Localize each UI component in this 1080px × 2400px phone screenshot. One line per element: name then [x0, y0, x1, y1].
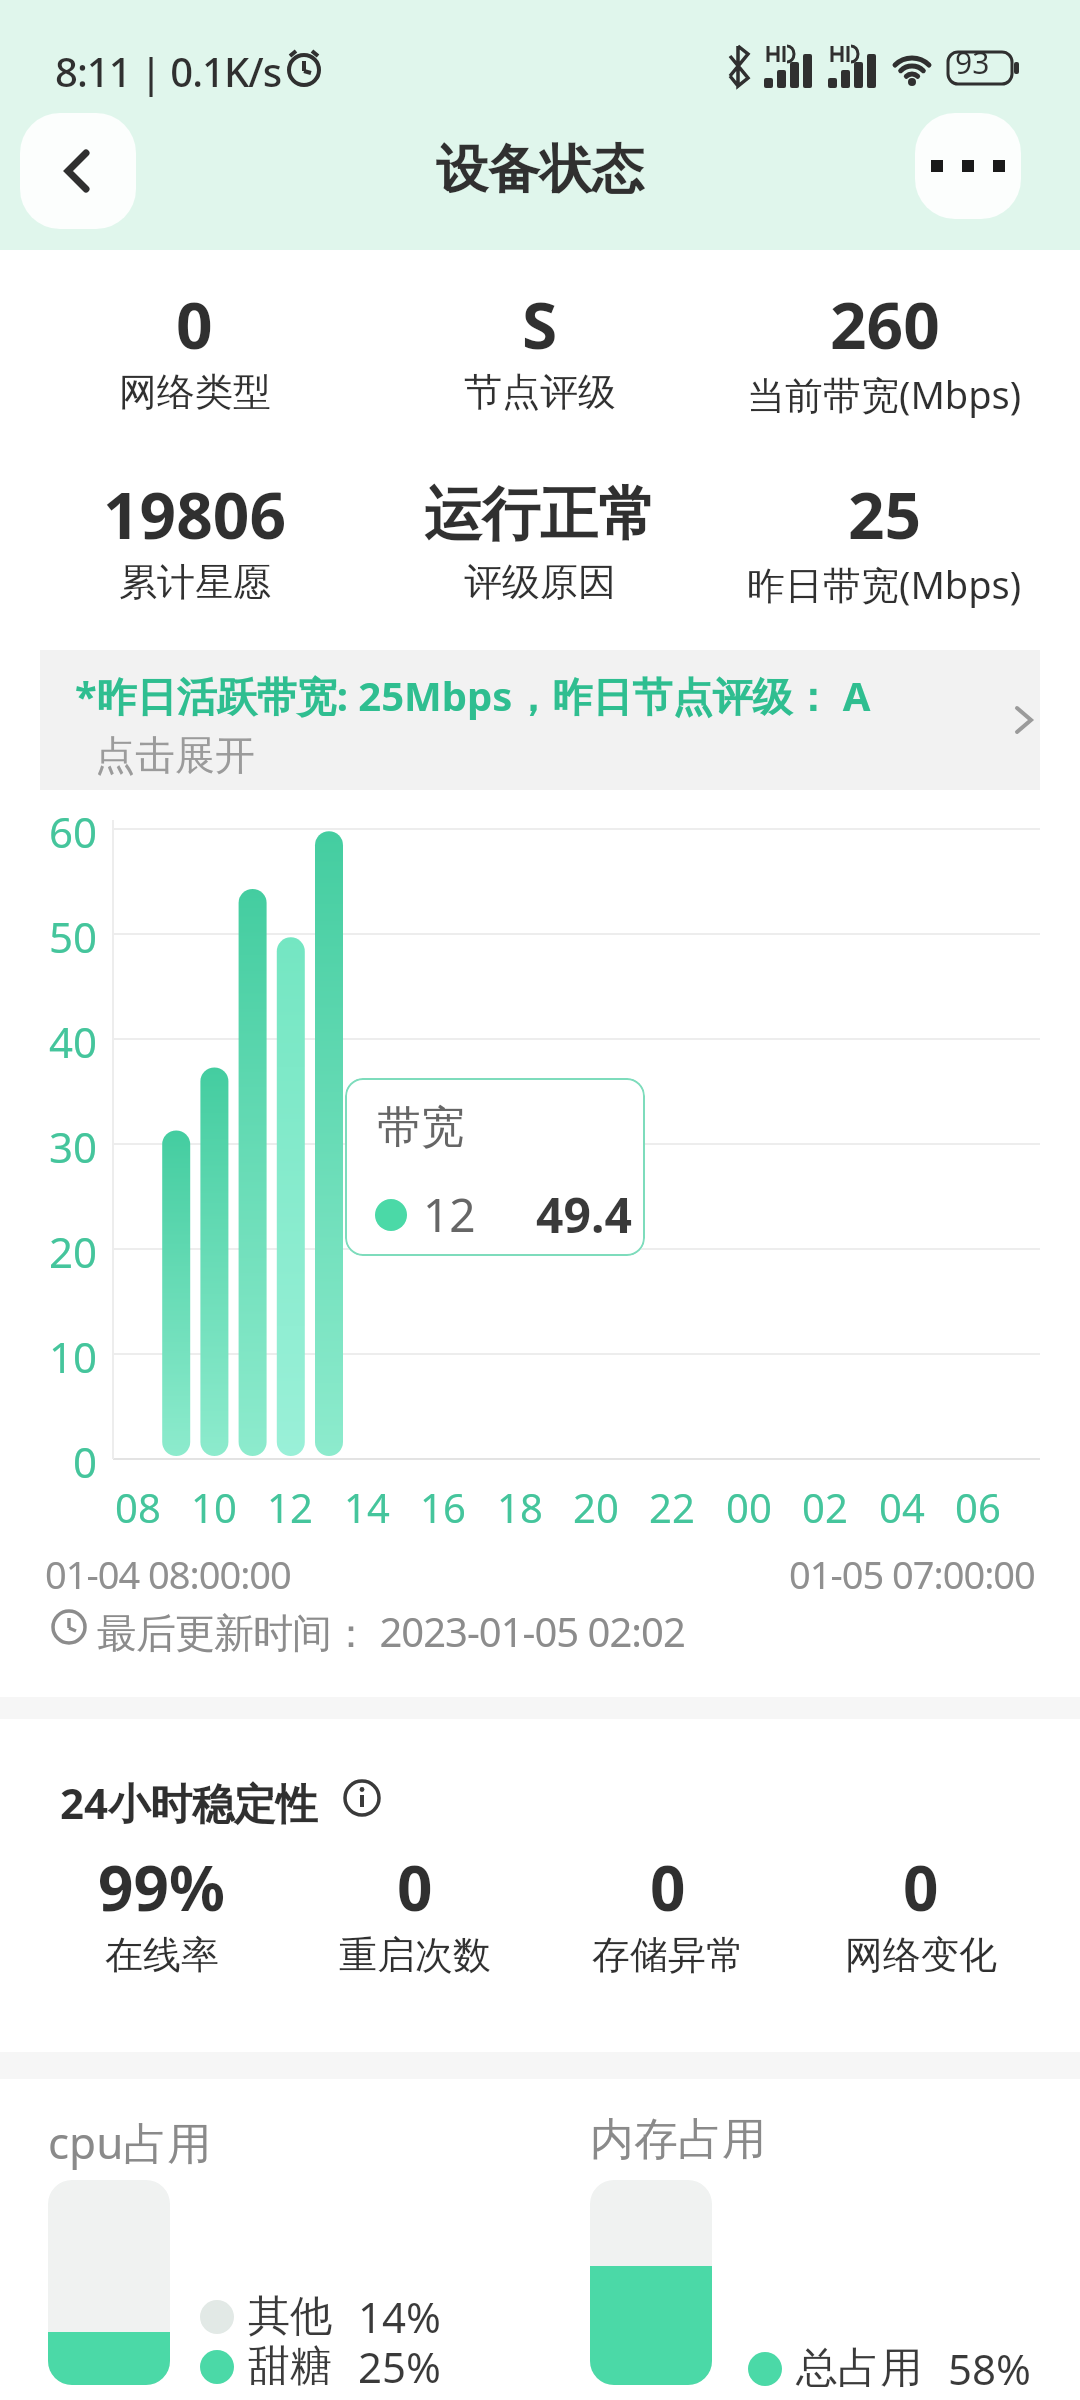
- staticText: 带宽: [377, 1100, 465, 1155]
- staticText: 30: [49, 1118, 98, 1175]
- staticText: *昨日活跃带宽: 25Mbps，昨日节点评级： A: [75, 668, 871, 723]
- staticText: 0: [397, 1845, 433, 1929]
- staticText: 25: [848, 471, 922, 558]
- staticText: 260: [830, 281, 940, 368]
- staticText: 16: [420, 1480, 466, 1534]
- staticText: 04: [879, 1480, 925, 1534]
- staticText: 50: [49, 908, 98, 965]
- staticText: 49.4: [536, 1182, 632, 1247]
- button[interactable]: *昨日活跃带宽: 25Mbps，昨日节点评级： A: [40, 650, 1040, 790]
- staticText: 网络类型: [119, 368, 271, 416]
- staticText: 06: [955, 1480, 1001, 1534]
- staticText: 93: [955, 42, 990, 83]
- staticText: 点击展开: [95, 730, 255, 780]
- staticText: 08: [115, 1480, 161, 1534]
- staticText: 总占用: [796, 2342, 922, 2395]
- staticText: 20: [49, 1223, 98, 1280]
- staticText: 运行正常: [424, 478, 656, 551]
- staticText: 存储异常: [592, 1931, 744, 1979]
- staticText: 0: [73, 1433, 98, 1490]
- staticText: 60: [49, 803, 98, 860]
- staticText: cpu占用: [48, 2112, 212, 2172]
- staticText: 00: [726, 1480, 772, 1534]
- staticText: 0: [650, 1845, 686, 1929]
- button[interactable]: [20, 113, 136, 229]
- staticText: 19806: [103, 471, 287, 558]
- staticText: 12: [267, 1480, 313, 1534]
- staticText: 18: [497, 1480, 543, 1534]
- staticText: 0: [176, 281, 213, 368]
- staticText: 58%: [948, 2340, 1031, 2397]
- staticText: 10: [191, 1480, 237, 1534]
- staticText: 99%: [98, 1845, 225, 1929]
- staticText: 设备状态: [436, 137, 644, 203]
- staticText: 01-05 07:00:00: [789, 1548, 1035, 1600]
- staticText: 节点评级: [464, 368, 616, 416]
- staticText: 评级原因: [464, 558, 616, 606]
- staticText: 8:11 | 0.1K/s: [55, 44, 282, 98]
- staticText: 当前带宽(Mbps): [747, 368, 1022, 420]
- staticText: 14: [344, 1480, 390, 1534]
- staticText: 甜糖: [248, 2340, 332, 2393]
- staticText: S: [522, 281, 558, 368]
- staticText: 10: [49, 1328, 98, 1385]
- staticText: 22: [649, 1480, 695, 1534]
- staticText: 14%: [358, 2288, 441, 2345]
- staticText: 40: [49, 1013, 98, 1070]
- staticText: 网络变化: [845, 1931, 997, 1979]
- staticText: 01-04 08:00:00: [45, 1548, 291, 1600]
- staticText: 02: [802, 1480, 848, 1534]
- staticText: 其他: [248, 2290, 332, 2343]
- staticText: 20: [573, 1480, 619, 1534]
- staticText: 内存占用: [590, 2112, 766, 2167]
- staticText: 25%: [358, 2338, 441, 2395]
- staticText: 重启次数: [339, 1931, 491, 1979]
- staticText: 在线率: [105, 1931, 219, 1979]
- staticText: 0: [903, 1845, 939, 1929]
- staticText: 12: [423, 1183, 476, 1246]
- staticText: 24小时稳定性: [60, 1774, 319, 1831]
- staticText: 最后更新时间： 2023-01-05 02:02: [97, 1604, 685, 1659]
- staticText: 累计星愿: [119, 558, 271, 606]
- staticText: 昨日带宽(Mbps): [747, 558, 1022, 610]
- button[interactable]: [915, 113, 1021, 219]
